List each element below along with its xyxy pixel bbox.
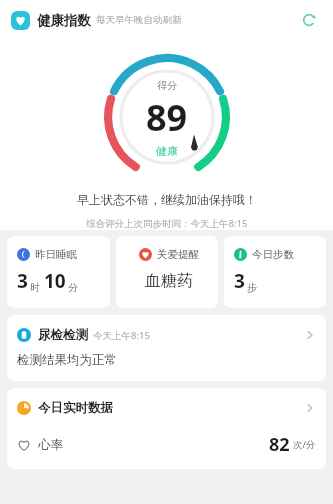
staticText: 今天上午8:15 xyxy=(93,329,150,342)
staticText: 检测结果均为正常 xyxy=(17,352,117,368)
staticText: 得分 xyxy=(157,79,177,92)
button[interactable]: 昨日睡眠 xyxy=(7,236,110,308)
staticText: 10 xyxy=(44,268,66,294)
button[interactable]: 今日实时数据 xyxy=(7,388,326,426)
staticText: 3 xyxy=(234,268,245,294)
staticText: 89 xyxy=(146,93,188,142)
staticText: 每天早午晚自动刷新 xyxy=(96,14,182,26)
staticText: 血糖药 xyxy=(145,271,193,291)
staticText: 昨日睡眠 xyxy=(35,248,77,261)
button[interactable]: 关爱提醒 xyxy=(116,236,218,308)
staticText: 时 xyxy=(30,281,40,294)
button[interactable]: 尿检检测 xyxy=(7,315,326,381)
staticText: 关爱提醒 xyxy=(157,248,199,261)
button[interactable]: Refresh xyxy=(297,8,321,32)
staticText: 次/分 xyxy=(293,438,316,451)
button[interactable]: 今日步数 xyxy=(224,236,326,308)
button[interactable]: 心率 xyxy=(7,426,326,469)
staticText: 早上状态不错，继续加油保持哦！ xyxy=(77,192,257,207)
staticText: 综合评分上次同步时间：今天上午8:15 xyxy=(86,217,248,230)
staticText: 健康 xyxy=(156,144,178,158)
staticText: 3 xyxy=(17,268,28,294)
staticText: 今日步数 xyxy=(252,248,294,261)
staticText: 82 xyxy=(269,432,290,457)
staticText: 分 xyxy=(68,281,78,294)
staticText: 健康指数 xyxy=(37,12,91,29)
staticText: 尿检检测 xyxy=(38,327,88,343)
staticText: 今日实时数据 xyxy=(38,400,113,416)
staticText: 步 xyxy=(247,281,257,294)
staticText: 心率 xyxy=(38,437,63,453)
